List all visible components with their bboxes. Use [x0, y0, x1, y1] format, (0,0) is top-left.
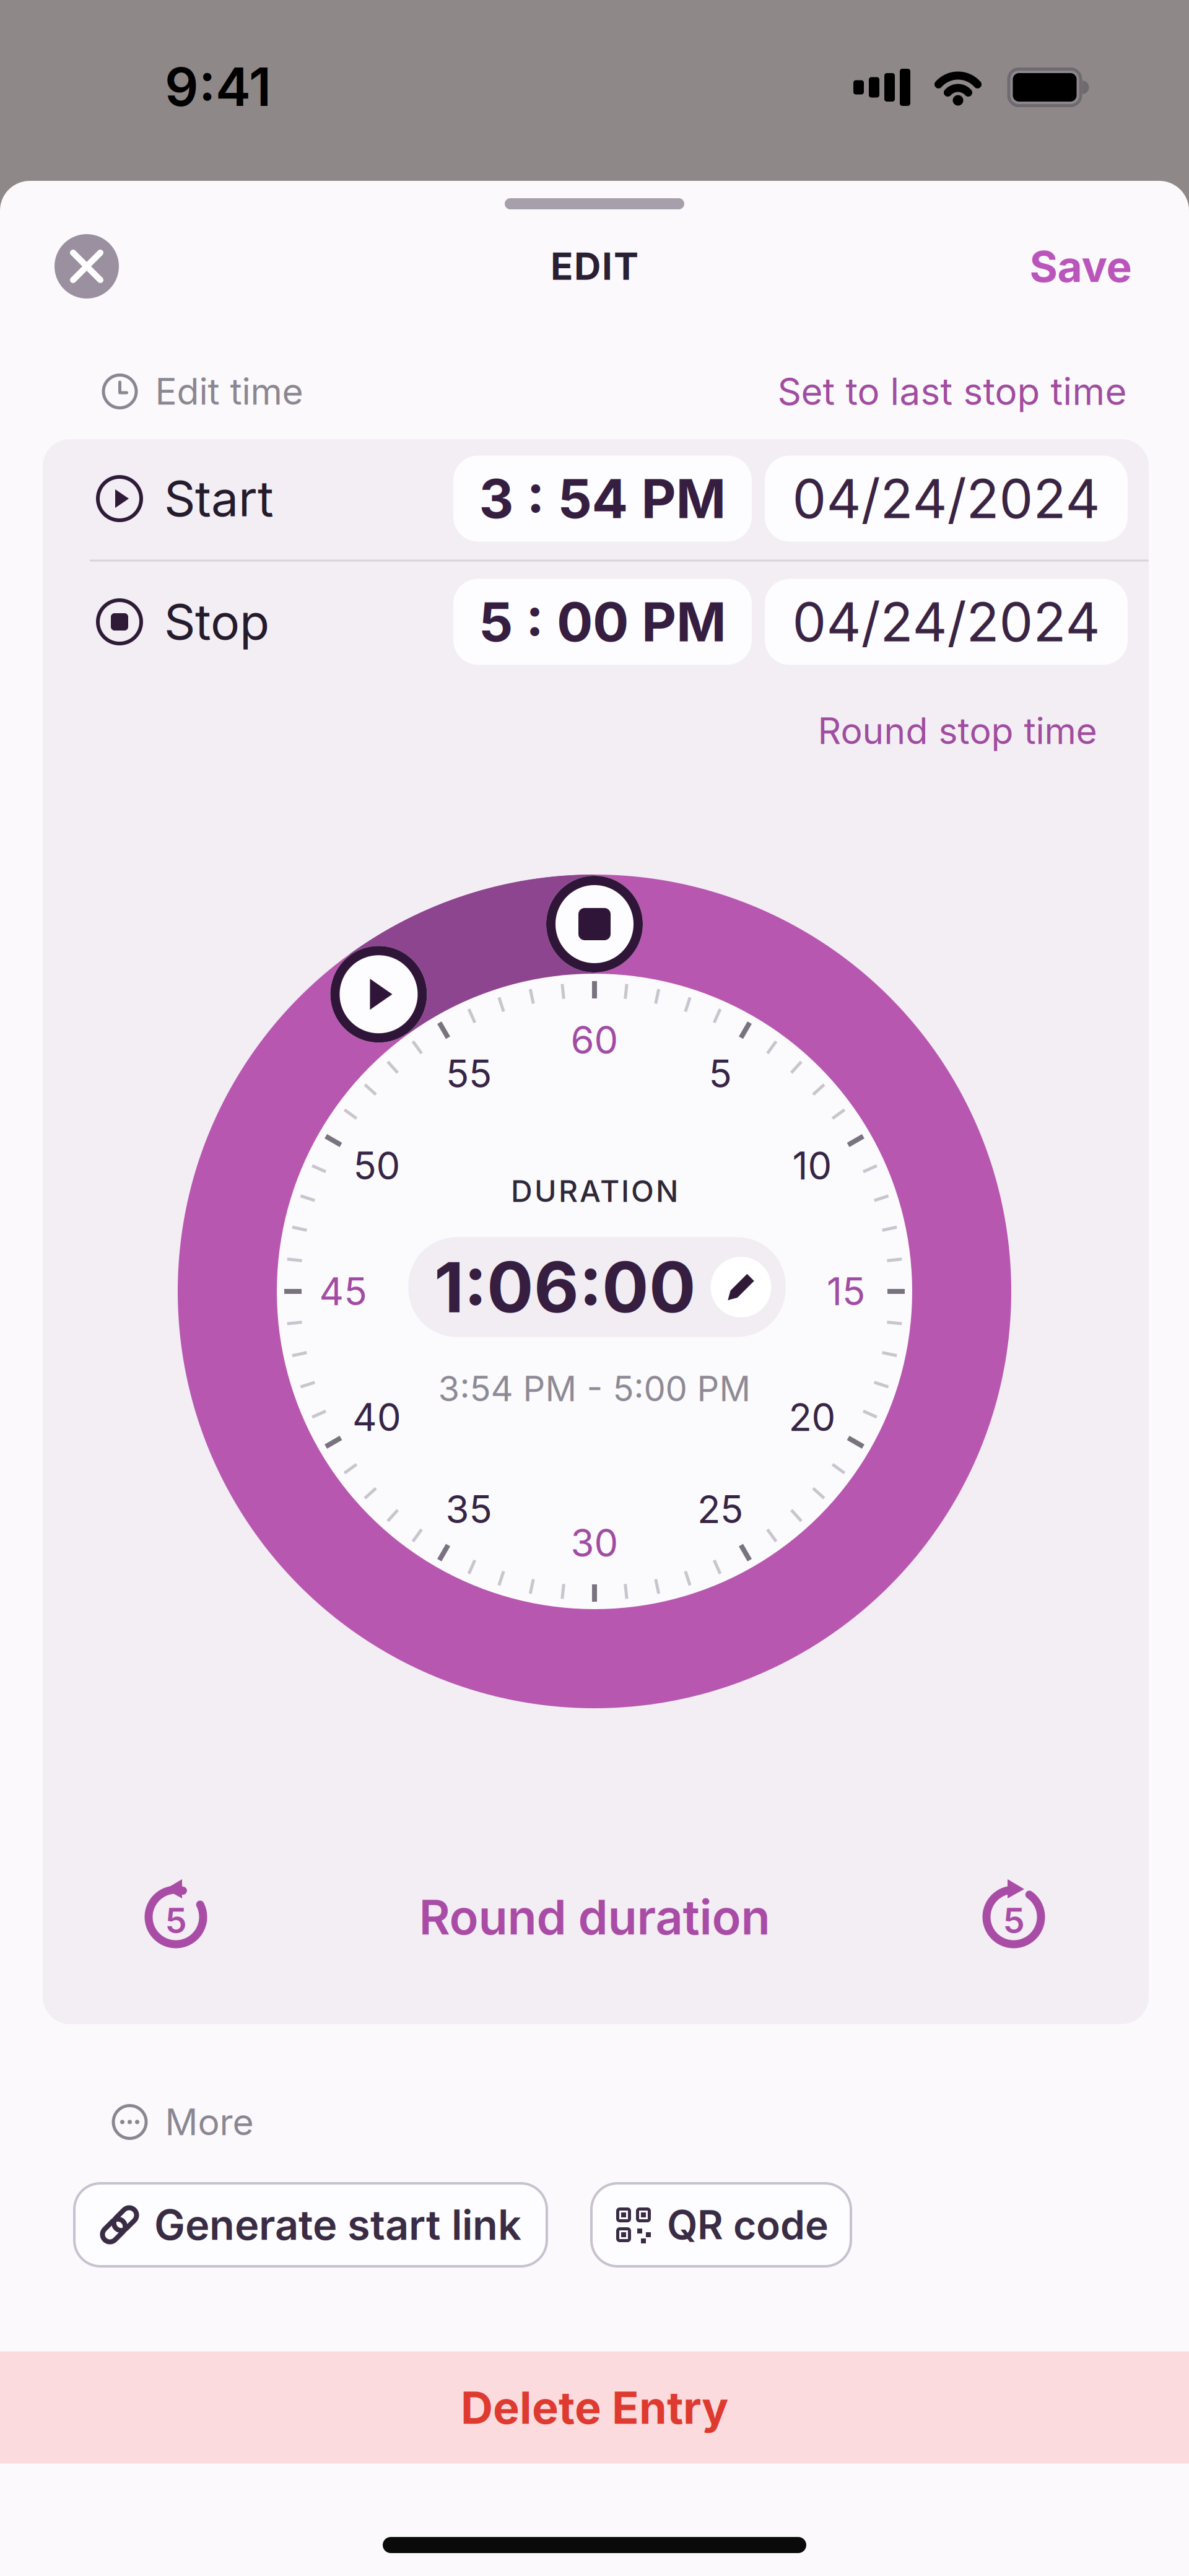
staticText: Set to last stop time	[777, 370, 1127, 413]
staticText: 5	[709, 1051, 732, 1096]
staticText: Stop	[164, 593, 269, 651]
staticText: 9:41	[165, 56, 271, 118]
staticText: Round stop time	[818, 709, 1097, 752]
button[interactable]: Round duration	[419, 1889, 770, 1945]
button[interactable]: 04/24/2024	[765, 456, 1128, 542]
staticText: 5	[165, 1900, 187, 1941]
staticText: Round duration	[419, 1889, 770, 1945]
staticText: 3:54 PM - 5:00 PM	[438, 1368, 751, 1409]
staticText: Delete Entry	[461, 2381, 728, 2434]
staticText: Start	[164, 470, 274, 527]
staticText: QR code	[667, 2201, 829, 2248]
staticText: 55	[446, 1051, 492, 1096]
button[interactable]: Edit duration	[408, 1237, 786, 1337]
staticText: More	[165, 2101, 254, 2143]
staticText: 15	[827, 1269, 865, 1314]
staticText: Generate start link	[154, 2200, 521, 2249]
button[interactable]: Save	[1030, 241, 1132, 292]
button[interactable]: 5 : 00 PM	[453, 579, 752, 665]
staticText: Save	[1030, 241, 1132, 292]
staticText: 10	[792, 1143, 832, 1188]
button[interactable]: More	[112, 2101, 254, 2143]
button[interactable]: Round duration up	[980, 1883, 1048, 1951]
button[interactable]: QR code	[590, 2182, 852, 2268]
staticText: 3 : 54 PM	[479, 467, 726, 530]
staticText: 35	[446, 1487, 492, 1532]
button[interactable]: 04/24/2024	[765, 579, 1128, 665]
staticText: 60	[571, 1018, 618, 1062]
button[interactable]: Set to last stop time	[777, 370, 1127, 413]
button[interactable]: Start handle	[330, 946, 427, 1043]
staticText: 30	[571, 1520, 618, 1565]
button[interactable]: Delete Entry	[0, 2351, 1189, 2464]
staticText: 50	[353, 1143, 400, 1188]
button[interactable]: Generate start link	[73, 2182, 548, 2268]
staticText: 1:06:00	[434, 1246, 696, 1328]
button[interactable]: 3 : 54 PM	[453, 456, 752, 542]
staticText: EDIT	[551, 244, 638, 288]
staticText: DURATION	[511, 1174, 678, 1209]
staticText: 40	[352, 1395, 401, 1440]
button[interactable]: Stop handle	[546, 876, 643, 972]
button[interactable]: Close	[54, 234, 119, 299]
staticText: 20	[789, 1395, 836, 1440]
button[interactable]: Round duration down	[142, 1883, 210, 1951]
staticText: Edit time	[155, 370, 303, 413]
staticText: 5 : 00 PM	[479, 590, 726, 654]
button[interactable]: Round stop time	[818, 709, 1097, 752]
staticText: 04/24/2024	[792, 590, 1100, 654]
staticText: 45	[319, 1269, 367, 1314]
staticText: 04/24/2024	[792, 467, 1100, 530]
staticText: 5	[1003, 1900, 1025, 1941]
staticText: 25	[697, 1487, 743, 1532]
